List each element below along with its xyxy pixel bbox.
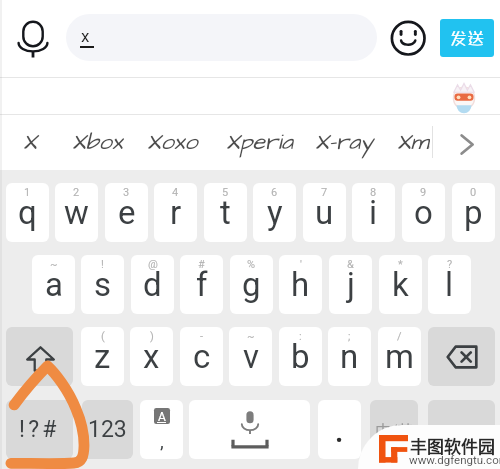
button[interactable]: 4 [154,183,197,242]
staticText: 9 [420,186,427,199]
button[interactable]: / [378,327,421,386]
staticText: 丰图软件园 [410,433,495,458]
staticText: u [315,193,334,232]
button[interactable]: 8 [352,183,395,242]
button[interactable]: ( [81,327,124,386]
button[interactable]: 7 [303,183,346,242]
staticText: h [291,265,310,304]
button[interactable]: Enter [428,400,495,459]
staticText: ' [300,258,302,271]
button[interactable]: ! [81,255,124,314]
button[interactable]: A [140,400,183,459]
button[interactable]: ) [130,327,173,386]
staticText: p [464,193,483,232]
button[interactable]: Backspace [428,327,495,386]
staticText: % [247,258,256,271]
staticText: n [340,337,359,376]
staticText: i [369,193,378,232]
button[interactable]: ~ [32,255,75,314]
button[interactable]: Emoji [388,18,428,58]
button[interactable]: ? [428,255,471,314]
staticText: ) [150,330,154,343]
button[interactable]: 6 [253,183,296,242]
staticText: Xbox [72,126,123,158]
button[interactable]: ~ [229,327,272,386]
staticText: !?# [19,416,60,443]
button[interactable]: 123 [82,400,133,459]
staticText: & [347,258,354,271]
staticText: 1 [24,186,31,199]
staticText: t [220,193,231,232]
staticText: X-ray [315,126,373,158]
button[interactable]: 3 [105,183,148,242]
button[interactable]: 2 [55,183,98,242]
staticText: e [118,193,136,232]
staticText: Xoxo [147,126,198,158]
button[interactable]: Xoxo [136,115,187,170]
staticText: l [445,265,454,304]
button[interactable]: !?# [6,400,73,459]
staticText: 8 [370,186,377,199]
button[interactable]: X-ray [304,115,362,170]
staticText: 0 [470,186,477,199]
staticText: , [160,430,164,452]
staticText: 3 [123,186,130,199]
staticText: ~ [247,330,255,343]
staticText: Xmas [397,126,452,158]
staticText: 发送 [450,28,484,48]
button[interactable]: Xbox [61,115,112,170]
button[interactable]: Shift [6,327,73,386]
staticText: # [198,258,205,271]
staticText: b [291,337,310,376]
staticText: / [397,330,402,343]
staticText: ( [101,330,105,343]
staticText: r [170,193,182,232]
staticText: 6 [271,186,278,199]
button[interactable]: @ [131,255,174,314]
staticText: ! [101,258,104,271]
button[interactable]: ; [328,327,371,386]
staticText: c [193,337,211,376]
button[interactable]: * [379,255,422,314]
button[interactable]: 9 [402,183,445,242]
button[interactable]: Xmas [386,115,441,170]
staticText: Xperia [226,126,293,158]
staticText: m [385,337,414,376]
staticText: x [143,337,160,376]
button[interactable]: 中/英 [370,400,418,459]
button[interactable]: - [180,327,223,386]
button[interactable]: 5 [204,183,247,242]
staticText: 7 [321,186,328,199]
staticText: g [242,265,261,304]
staticText: w [64,193,89,232]
button[interactable]: x [66,14,377,61]
staticText: @ [148,258,158,271]
staticText: ; [348,330,351,343]
button[interactable]: 1 [6,183,49,242]
button[interactable]: # [180,255,223,314]
button[interactable]: ' [279,255,322,314]
button[interactable]: Period [318,400,361,459]
button[interactable]: 发送 [440,19,494,57]
staticText: z [94,337,111,376]
staticText: x [81,26,90,46]
button[interactable]: Xperia [215,115,282,170]
button[interactable]: 0 [452,183,495,242]
button[interactable]: Space [189,400,310,459]
staticText: k [392,265,409,304]
staticText: 中/英 [375,418,414,441]
button[interactable]: : [279,327,322,386]
staticText: o [414,193,433,232]
button[interactable]: & [329,255,372,314]
button[interactable]: More suggestions [448,126,484,162]
button[interactable]: Sticker [447,80,481,114]
staticText: * [398,258,403,271]
staticText: ? [447,258,453,271]
button[interactable]: % [230,255,273,314]
staticText: j [347,265,355,304]
button[interactable]: X [12,115,26,170]
staticText: : [299,330,302,343]
button[interactable]: Voice input [13,17,53,61]
staticText: ~ [50,258,58,271]
staticText: q [18,193,37,232]
